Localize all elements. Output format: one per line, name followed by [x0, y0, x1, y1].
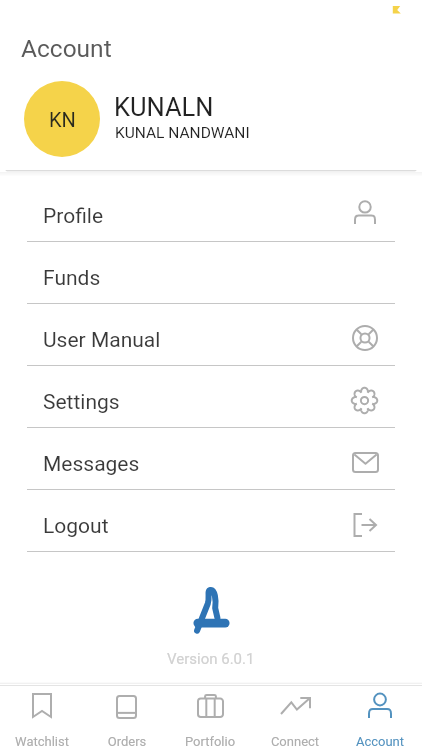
staticText: KUNAL NANDWANI [115, 124, 250, 142]
button[interactable]: Settings [0, 366, 422, 428]
staticText: Connect [253, 734, 337, 749]
staticText: Logout [43, 514, 109, 539]
button[interactable]: Watchlist [0, 686, 84, 750]
button[interactable]: Logout [0, 490, 422, 552]
staticText: Orders [85, 734, 169, 749]
button[interactable]: Portfolio [168, 686, 252, 750]
button[interactable]: Funds [0, 242, 422, 304]
staticText: Profile [43, 204, 104, 229]
button[interactable]: Account [338, 686, 422, 750]
staticText: KN [49, 108, 76, 131]
staticText: Watchlist [0, 734, 84, 749]
button[interactable]: Profile [0, 180, 422, 242]
staticText: User Manual [43, 328, 161, 353]
button[interactable]: Orders [85, 686, 169, 750]
button[interactable]: Connect [253, 686, 337, 750]
staticText: Account [338, 734, 422, 749]
staticText: Version 6.0.1 [167, 650, 255, 668]
staticText: KUNALN [114, 92, 214, 122]
staticText: Portfolio [168, 734, 252, 749]
staticText: Messages [43, 452, 140, 477]
staticText: Account [21, 34, 112, 63]
staticText: Settings [43, 390, 120, 415]
button[interactable]: Messages [0, 428, 422, 490]
staticText: Funds [43, 266, 101, 291]
button[interactable]: User Manual [0, 304, 422, 366]
